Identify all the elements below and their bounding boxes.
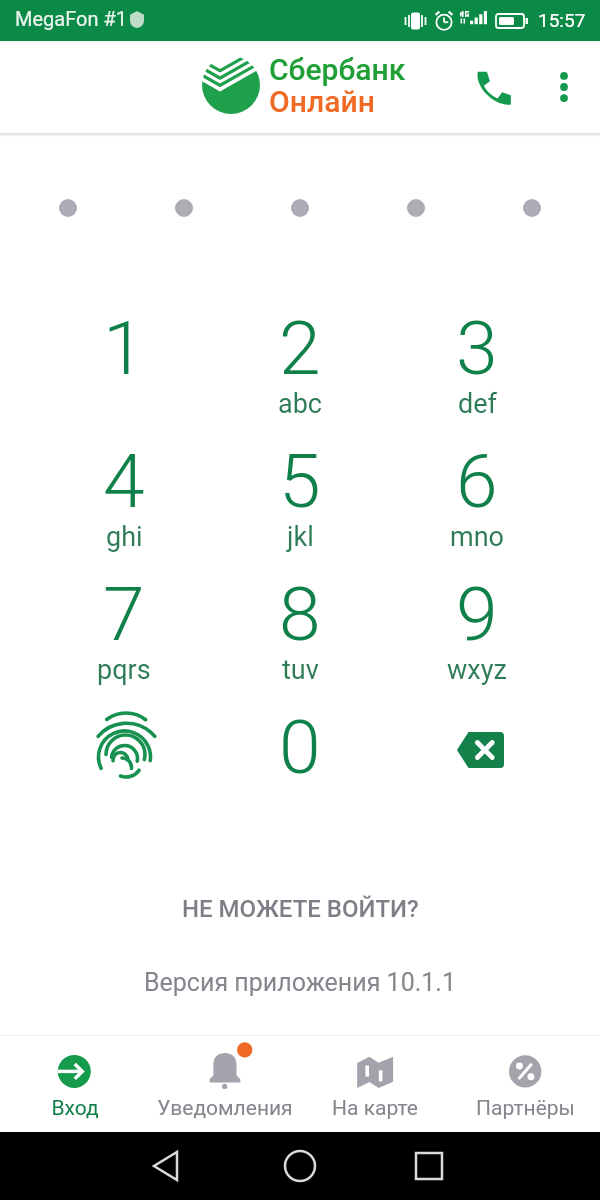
button[interactable]: Уведомления — [150, 1035, 300, 1132]
staticText: 4 — [103, 437, 145, 525]
staticText: 5 — [279, 437, 321, 525]
staticText: 15:57 — [538, 9, 586, 31]
staticText: 0 — [279, 703, 321, 791]
staticText: mno — [450, 521, 504, 553]
button[interactable] — [389, 566, 565, 699]
staticText: 6 — [456, 437, 498, 525]
button[interactable]: Fingerprint login — [36, 690, 212, 802]
button[interactable] — [36, 433, 212, 566]
staticText: def — [458, 388, 497, 420]
staticText: Сбербанк — [269, 52, 406, 87]
button[interactable]: More options — [536, 59, 592, 115]
staticText: 8 — [279, 570, 321, 658]
button[interactable]: На карте — [300, 1035, 450, 1132]
staticText: 9 — [456, 570, 498, 658]
staticText: 7 — [103, 570, 145, 658]
staticText: jkl — [287, 521, 314, 553]
staticText: abc — [278, 388, 322, 420]
button[interactable]: Партнёры — [450, 1035, 600, 1132]
button[interactable]: Вход — [0, 1035, 150, 1132]
staticText: НЕ МОЖЕТЕ ВОЙТИ? — [182, 895, 419, 923]
button[interactable] — [36, 300, 212, 433]
staticText: tuv — [282, 654, 319, 686]
staticText: Партнёры — [476, 1096, 575, 1121]
staticText: pqrs — [97, 654, 151, 686]
staticText: ghi — [106, 521, 143, 553]
button[interactable]: Call — [464, 58, 522, 116]
staticText: Вход — [51, 1096, 99, 1121]
button[interactable] — [212, 690, 388, 802]
button[interactable] — [212, 566, 388, 699]
button[interactable] — [212, 300, 388, 433]
button[interactable] — [36, 566, 212, 699]
staticText: wxyz — [447, 654, 507, 686]
button[interactable] — [389, 300, 565, 433]
staticText: 1 — [103, 304, 145, 392]
button[interactable] — [212, 433, 388, 566]
button[interactable] — [389, 433, 565, 566]
staticText: Версия приложения 10.1.1 — [144, 968, 456, 997]
staticText: MegaFon #1 — [15, 7, 127, 30]
button[interactable]: Delete — [389, 690, 565, 802]
staticText: Уведомления — [157, 1096, 293, 1121]
staticText: 2 — [279, 304, 321, 392]
button[interactable]: НЕ МОЖЕТЕ ВОЙТИ? — [0, 887, 600, 931]
staticText: На карте — [332, 1096, 418, 1121]
staticText: Онлайн — [269, 84, 375, 119]
staticText: 3 — [456, 304, 498, 392]
